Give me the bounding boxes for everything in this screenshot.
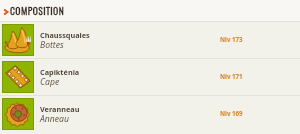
button[interactable]: Chaussquales xyxy=(0,22,300,58)
staticText: Chaussquales xyxy=(40,30,90,40)
button[interactable]: Capikténia xyxy=(0,59,300,95)
staticText: Cape xyxy=(40,76,60,88)
button[interactable]: Veranneau xyxy=(0,96,300,132)
staticText: Bottes xyxy=(40,39,64,51)
staticText: Veranneau xyxy=(40,104,80,114)
staticText: Niv 171 xyxy=(220,72,243,80)
staticText: Niv 173 xyxy=(220,35,243,43)
staticText: Capikténia xyxy=(40,67,80,77)
staticText: Niv 169 xyxy=(220,109,243,117)
button[interactable]: COMPOSITION xyxy=(0,0,300,21)
staticText: Anneau xyxy=(40,113,69,125)
staticText: COMPOSITION xyxy=(10,4,65,18)
